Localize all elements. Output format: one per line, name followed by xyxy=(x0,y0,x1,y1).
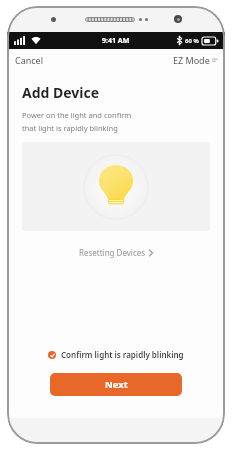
button[interactable]: Next xyxy=(50,373,182,396)
other: Mode options xyxy=(212,57,218,63)
staticText: EZ Mode xyxy=(173,54,210,66)
staticText: that light is rapidly blinking xyxy=(22,123,118,133)
button[interactable]: Resetting Devices xyxy=(69,243,163,262)
staticText: Next xyxy=(105,378,128,391)
staticText: Power on the light and confirm xyxy=(22,110,132,120)
button[interactable]: Cancel xyxy=(7,51,52,69)
staticText: Cancel xyxy=(15,54,44,66)
staticText: Resetting Devices xyxy=(79,247,146,258)
staticText: 9:41 AM xyxy=(102,36,130,46)
button[interactable]: Confirm light is rapidly blinking xyxy=(40,345,192,364)
staticText: 60 % xyxy=(185,37,199,45)
staticText: Add Device xyxy=(22,83,100,102)
button[interactable]: EZ Mode xyxy=(166,51,225,69)
staticText: Confirm light is rapidly blinking xyxy=(61,349,184,360)
